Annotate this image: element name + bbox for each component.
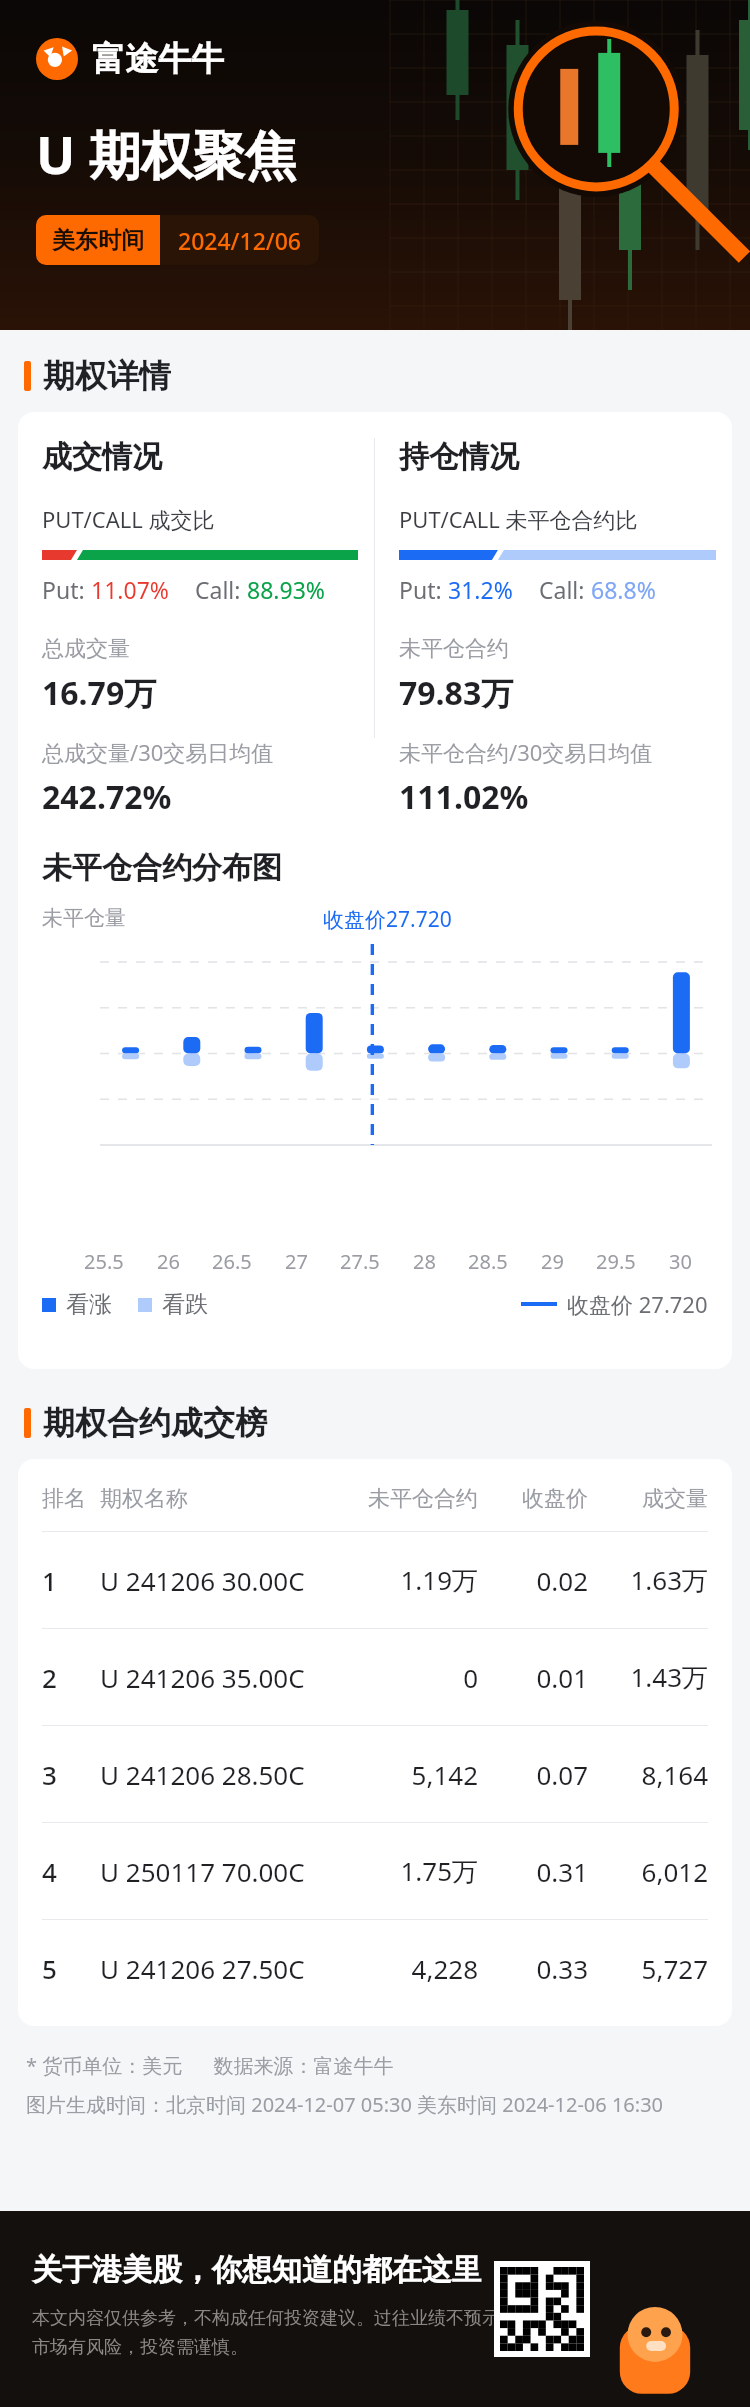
staticText: 未平仓合约分布图	[42, 849, 282, 887]
staticText: 图片生成时间：北京时间 2024-12-07 05:30 美东时间 2024-1…	[26, 2091, 664, 2118]
staticText: Call:	[195, 574, 247, 605]
button[interactable]: 3	[42, 1726, 708, 1822]
staticText: 26.5	[212, 1248, 252, 1275]
staticText: 2024/12/06	[178, 225, 301, 256]
staticText: 期权名称	[100, 1485, 328, 1513]
staticText: 1.19万	[328, 1562, 478, 1598]
staticText: 5,727	[588, 1951, 708, 1986]
staticText: 11.07%	[91, 574, 169, 605]
staticText: 31.2%	[448, 574, 513, 605]
button[interactable]: 2	[42, 1629, 708, 1725]
staticText: 27.5	[340, 1248, 380, 1275]
staticText: 5,142	[328, 1757, 478, 1792]
staticText: 收盘价27.720	[323, 905, 452, 934]
staticText: PUT/CALL 成交比	[42, 504, 215, 534]
staticText: 成交情况	[42, 438, 162, 476]
staticText: 未平仓合约	[328, 1485, 478, 1513]
staticText: 1.75万	[328, 1853, 478, 1889]
staticText: U 250117 70.00C	[100, 1854, 328, 1889]
staticText: 2	[42, 1660, 100, 1695]
staticText: U 241206 28.50C	[100, 1757, 328, 1792]
staticText: 收盘价	[478, 1485, 588, 1513]
staticText: 25.5	[84, 1248, 124, 1275]
staticText: 242.72%	[42, 775, 172, 819]
staticText: 期权合约成交榜	[43, 1403, 267, 1443]
staticText: 本文内容仅供参考，不构成任何投资建议。过往业绩不预示未来表现，	[32, 2307, 590, 2330]
staticText: 未平仓合约	[399, 635, 509, 663]
staticText: 16.79万	[42, 671, 157, 715]
staticText: 28	[413, 1248, 436, 1275]
staticText: 8,164	[588, 1757, 708, 1792]
staticText: 29	[541, 1248, 564, 1275]
staticText: 6,012	[588, 1854, 708, 1889]
staticText: * 货币单位：美元 数据来源：富途牛牛	[26, 2052, 394, 2079]
staticText: U 期权聚焦	[36, 118, 297, 189]
staticText: 总成交量	[42, 635, 130, 663]
button[interactable]: 5	[42, 1920, 708, 2016]
staticText: U 241206 27.50C	[100, 1951, 328, 1986]
staticText: 79.83万	[399, 671, 514, 715]
staticText: 0.33	[478, 1951, 588, 1986]
other: QR code	[494, 2261, 590, 2357]
staticText: 排名	[42, 1485, 100, 1513]
staticText: 成交量	[588, 1485, 708, 1513]
staticText: 1.43万	[588, 1659, 708, 1695]
staticText: 0	[328, 1660, 478, 1695]
button[interactable]: 4	[42, 1823, 708, 1919]
staticText: 0.07	[478, 1757, 588, 1792]
staticText: 0.01	[478, 1660, 588, 1695]
staticText: 1	[42, 1563, 100, 1598]
staticText: 富途牛牛	[92, 38, 224, 80]
staticText: 市场有风险，投资需谨慎。	[32, 2336, 248, 2359]
staticText: 4,228	[328, 1951, 478, 1986]
staticText: 期权详情	[43, 356, 171, 396]
staticText: 26	[157, 1248, 180, 1275]
staticText: 30	[669, 1248, 692, 1275]
staticText: 3	[42, 1757, 100, 1792]
staticText: 未平仓合约/30交易日均值	[399, 737, 653, 767]
staticText: 29.5	[596, 1248, 636, 1275]
staticText: 0.02	[478, 1563, 588, 1598]
staticText: 111.02%	[399, 775, 529, 819]
staticText: 总成交量/30交易日均值	[42, 737, 274, 767]
button[interactable]: 1	[42, 1532, 708, 1628]
staticText: PUT/CALL 未平仓合约比	[399, 504, 638, 534]
staticText: Call:	[539, 574, 591, 605]
staticText: 5	[42, 1951, 100, 1986]
staticText: 27	[285, 1248, 308, 1275]
staticText: U 241206 35.00C	[100, 1660, 328, 1695]
staticText: 美东时间	[52, 226, 144, 255]
staticText: 持仓情况	[399, 438, 519, 476]
staticText: 收盘价 27.720	[567, 1289, 708, 1319]
staticText: 1.63万	[588, 1562, 708, 1598]
staticText: Put:	[42, 574, 91, 605]
staticText: 0.31	[478, 1854, 588, 1889]
staticText: 68.8%	[591, 574, 656, 605]
staticText: 看涨	[66, 1290, 112, 1319]
staticText: Put:	[399, 574, 448, 605]
staticText: 28.5	[468, 1248, 508, 1275]
staticText: 看跌	[162, 1290, 208, 1319]
button[interactable]: 美东时间	[36, 215, 319, 265]
staticText: 未平仓量	[42, 905, 126, 931]
staticText: 关于港美股，你想知道的都在这里	[32, 2251, 482, 2289]
staticText: U 241206 30.00C	[100, 1563, 328, 1598]
staticText: 88.93%	[247, 574, 325, 605]
staticText: 4	[42, 1854, 100, 1889]
